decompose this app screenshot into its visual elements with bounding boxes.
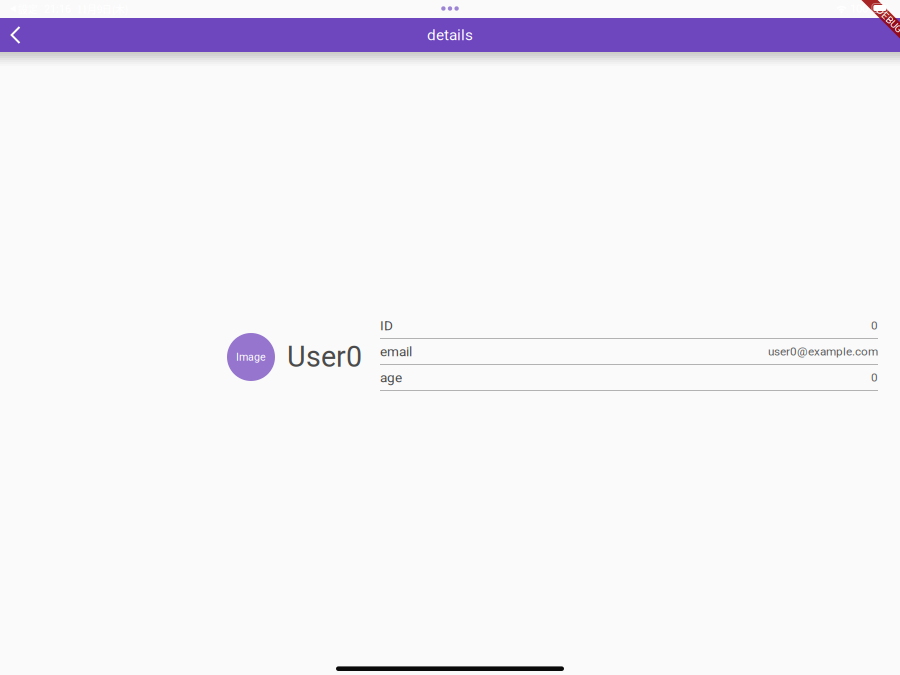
staticText: 0 <box>871 371 878 384</box>
staticText: ID <box>380 317 393 333</box>
staticText: email <box>380 343 412 359</box>
staticText: 100% <box>850 2 876 15</box>
staticText: user0@example.com <box>768 345 878 358</box>
staticText: User0 <box>287 340 362 374</box>
staticText: age <box>380 369 402 385</box>
staticText: Image <box>236 351 266 363</box>
staticText: 0 <box>871 319 878 332</box>
staticText: details <box>427 26 473 44</box>
button[interactable]: Back <box>0 18 34 52</box>
staticText: DEBUG <box>873 14 900 26</box>
